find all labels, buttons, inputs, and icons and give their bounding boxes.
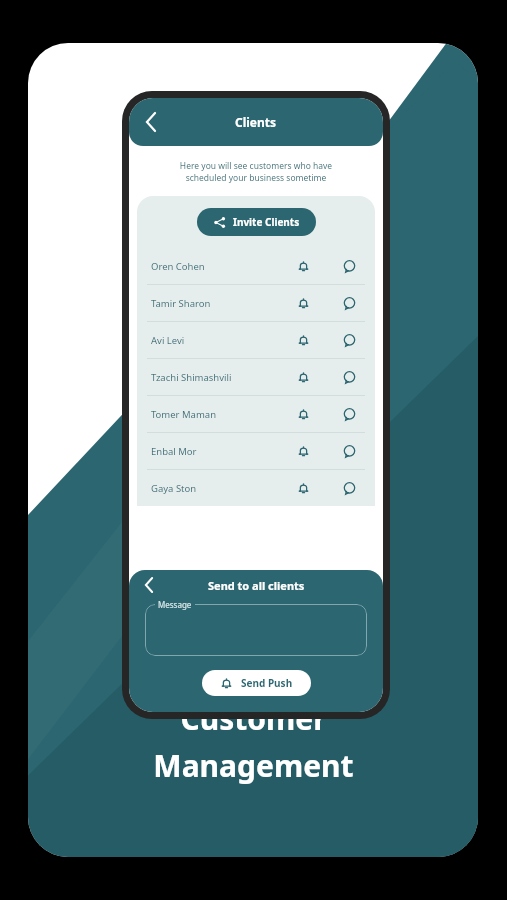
staticText: Gaya Ston (151, 482, 197, 495)
button[interactable]: Message (337, 328, 361, 352)
button[interactable]: Back (137, 108, 165, 136)
button[interactable]: Notify (291, 254, 315, 278)
button[interactable] (145, 604, 367, 656)
button[interactable]: Send Push (202, 670, 311, 696)
staticText: Oren Cohen (151, 260, 205, 273)
staticText: Send Push (241, 676, 293, 690)
button[interactable]: Gaya Ston (137, 470, 375, 506)
staticText: Tomer Maman (151, 408, 217, 421)
staticText: Avi Levi (151, 334, 185, 347)
button[interactable]: Tomer Maman (137, 396, 375, 432)
button[interactable]: Oren Cohen (137, 248, 375, 284)
staticText: Tzachi Shimashvili (151, 371, 232, 384)
button[interactable]: Tamir Sharon (137, 285, 375, 321)
button[interactable]: Invite Clients (197, 208, 316, 236)
staticText: Enbal Mor (151, 445, 197, 458)
button[interactable]: Notify (291, 476, 315, 500)
button[interactable]: Notify (291, 439, 315, 463)
staticText: Management (153, 745, 354, 786)
button[interactable]: Back (137, 573, 161, 597)
button[interactable]: Message (337, 291, 361, 315)
button[interactable]: Enbal Mor (137, 433, 375, 469)
staticText: Here you will see customers who have sch… (141, 160, 371, 184)
staticText: Clients (235, 114, 277, 130)
staticText: Customer (180, 698, 327, 739)
button[interactable]: Message (337, 254, 361, 278)
button[interactable]: Avi Levi (137, 322, 375, 358)
button[interactable]: Message (337, 402, 361, 426)
button[interactable]: Tzachi Shimashvili (137, 359, 375, 395)
button[interactable]: Notify (291, 365, 315, 389)
button[interactable]: Message (337, 476, 361, 500)
button[interactable]: Notify (291, 291, 315, 315)
staticText: Invite Clients (233, 215, 300, 229)
button[interactable]: Notify (291, 402, 315, 426)
staticText: Message (158, 599, 192, 610)
staticText: Tamir Sharon (151, 297, 211, 310)
staticText: Send to all clients (208, 578, 305, 593)
button[interactable]: Notify (291, 328, 315, 352)
button[interactable]: Message (337, 439, 361, 463)
button[interactable]: Message (337, 365, 361, 389)
